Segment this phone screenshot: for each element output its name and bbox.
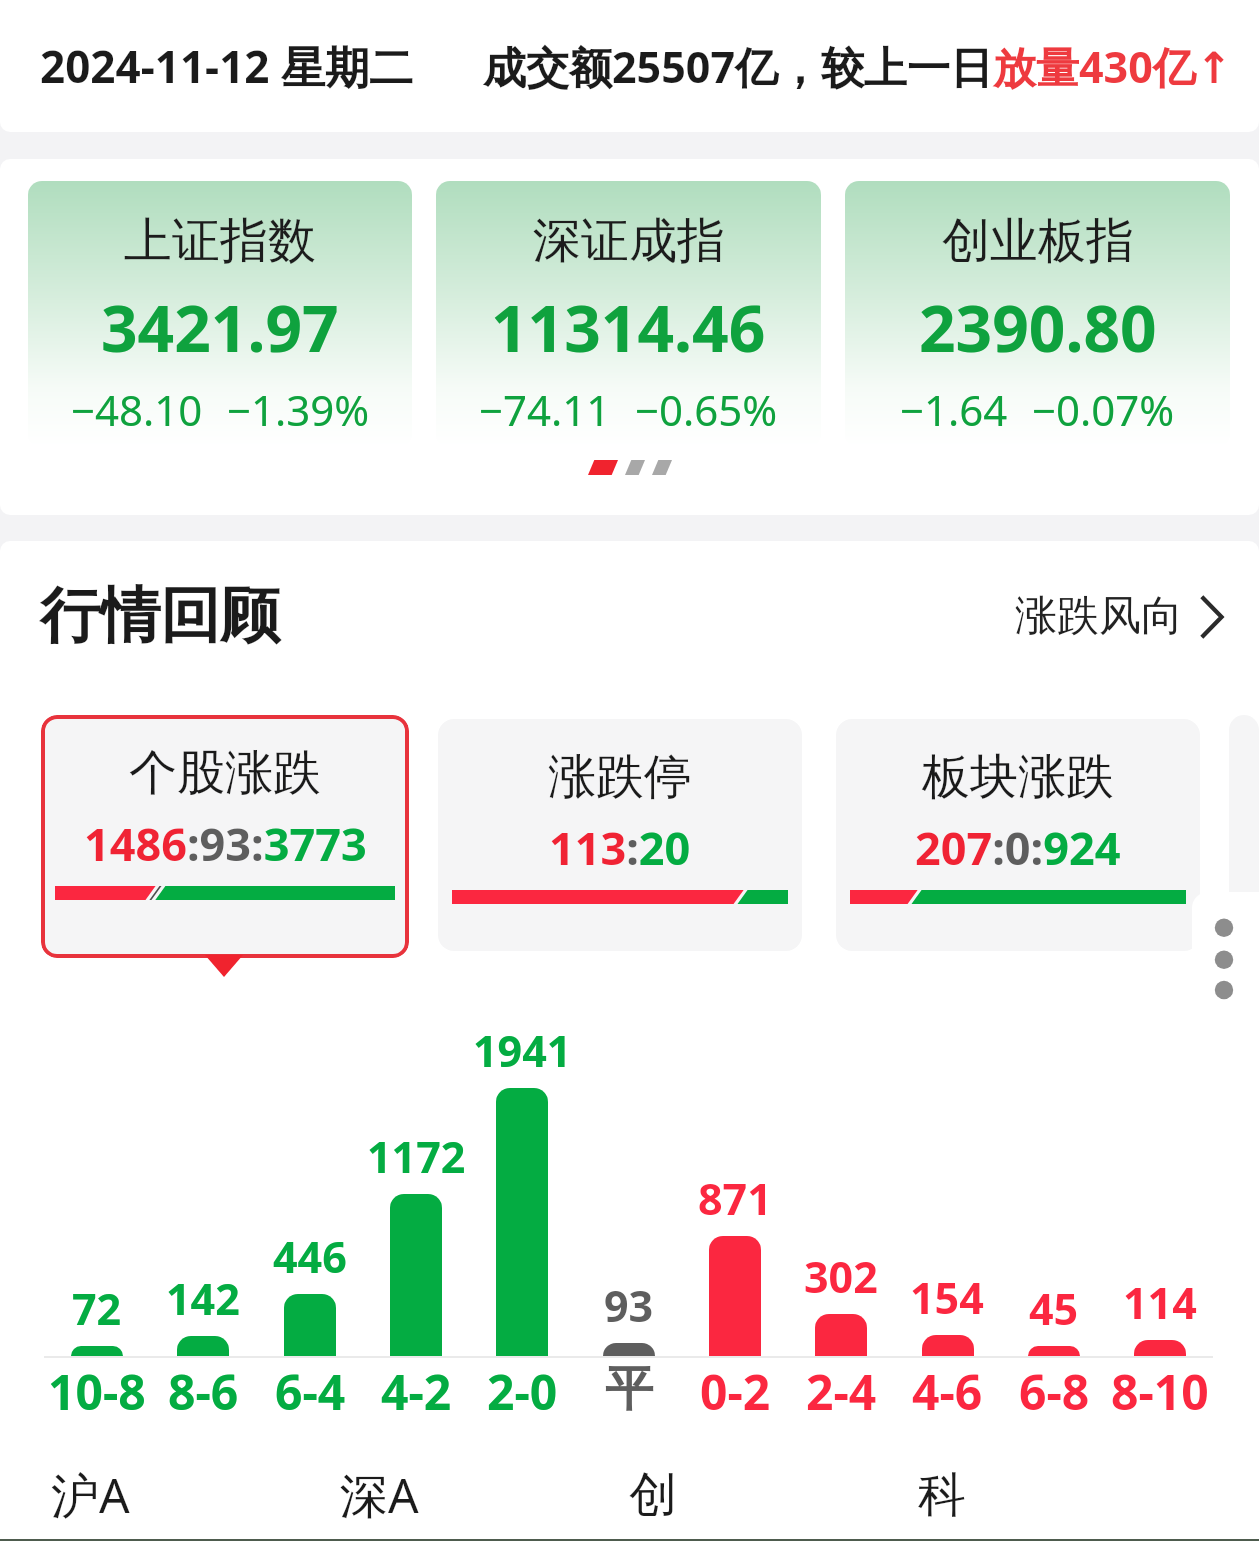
staticText: −1.39% <box>227 381 370 438</box>
staticText: 2-4 <box>806 1359 877 1424</box>
staticText: 平 <box>605 1359 653 1419</box>
staticText: 11314.46 <box>491 284 766 371</box>
button[interactable]: 沪A <box>51 1451 340 1539</box>
staticText: 创业板指 <box>942 211 1134 271</box>
staticText: 2390.80 <box>919 284 1157 371</box>
staticText: 154 <box>910 1268 984 1327</box>
button[interactable]: 板块涨跌 <box>836 719 1200 951</box>
staticText: 1486:93:3773 <box>84 813 367 874</box>
staticText: 成交额25507亿，较上一日放量430亿↑ <box>483 37 1232 96</box>
staticText: 1941 <box>473 1021 572 1080</box>
staticText: 113:20 <box>549 817 691 878</box>
staticText: 93 <box>604 1276 654 1335</box>
button[interactable]: 个股涨跌 <box>41 715 409 958</box>
staticText: 8-10 <box>1111 1359 1209 1424</box>
staticText: 6-4 <box>275 1359 346 1424</box>
staticText: 创 <box>629 1465 677 1525</box>
staticText: 行情回顾 <box>40 578 280 654</box>
button[interactable]: More options <box>1192 892 1259 1020</box>
staticText: 3421.97 <box>101 284 339 371</box>
staticText: 深A <box>340 1462 419 1528</box>
staticText: 2-0 <box>487 1359 558 1424</box>
button[interactable]: 深A <box>340 1451 629 1539</box>
button[interactable]: 上证指数 <box>28 181 412 447</box>
button[interactable]: 深证成指 <box>436 181 821 447</box>
staticText: 深证成指 <box>533 211 725 271</box>
button[interactable]: 涨跌停 <box>438 719 802 951</box>
staticText: −1.64 <box>900 381 1008 438</box>
button[interactable]: 科 <box>918 1451 1207 1539</box>
staticText: −48.10 <box>71 381 203 438</box>
staticText: −74.11 <box>479 381 611 438</box>
staticText: 6-8 <box>1019 1359 1090 1424</box>
staticText: 涨跌停 <box>548 747 692 807</box>
staticText: 207:0:924 <box>915 817 1121 878</box>
staticText: 302 <box>804 1247 878 1306</box>
staticText: 沪A <box>51 1462 130 1528</box>
staticText: 0-2 <box>700 1359 771 1424</box>
button[interactable]: 创业板指 <box>845 181 1230 447</box>
staticText: −0.65% <box>635 381 778 438</box>
staticText: 4-2 <box>381 1359 452 1424</box>
staticText: 446 <box>273 1227 347 1286</box>
staticText: 2024-11-12 星期二 <box>40 36 413 96</box>
staticText: −0.07% <box>1032 381 1175 438</box>
staticText: 个股涨跌 <box>129 743 321 803</box>
staticText: 科 <box>918 1465 966 1525</box>
staticText: 114 <box>1123 1273 1197 1332</box>
button[interactable]: 涨跌风向 <box>1015 590 1227 643</box>
staticText: 72 <box>72 1279 122 1338</box>
staticText: 板块涨跌 <box>922 747 1114 807</box>
staticText: 871 <box>698 1169 772 1228</box>
staticText: 45 <box>1029 1279 1079 1338</box>
button[interactable]: 创 <box>629 1451 918 1539</box>
staticText: 涨跌风向 <box>1015 590 1183 643</box>
staticText: 142 <box>166 1269 240 1328</box>
staticText: 10-8 <box>48 1359 146 1424</box>
staticText: 8-6 <box>168 1359 239 1424</box>
staticText: 上证指数 <box>124 211 316 271</box>
staticText: 4-6 <box>912 1359 983 1424</box>
staticText: 1172 <box>367 1127 466 1186</box>
